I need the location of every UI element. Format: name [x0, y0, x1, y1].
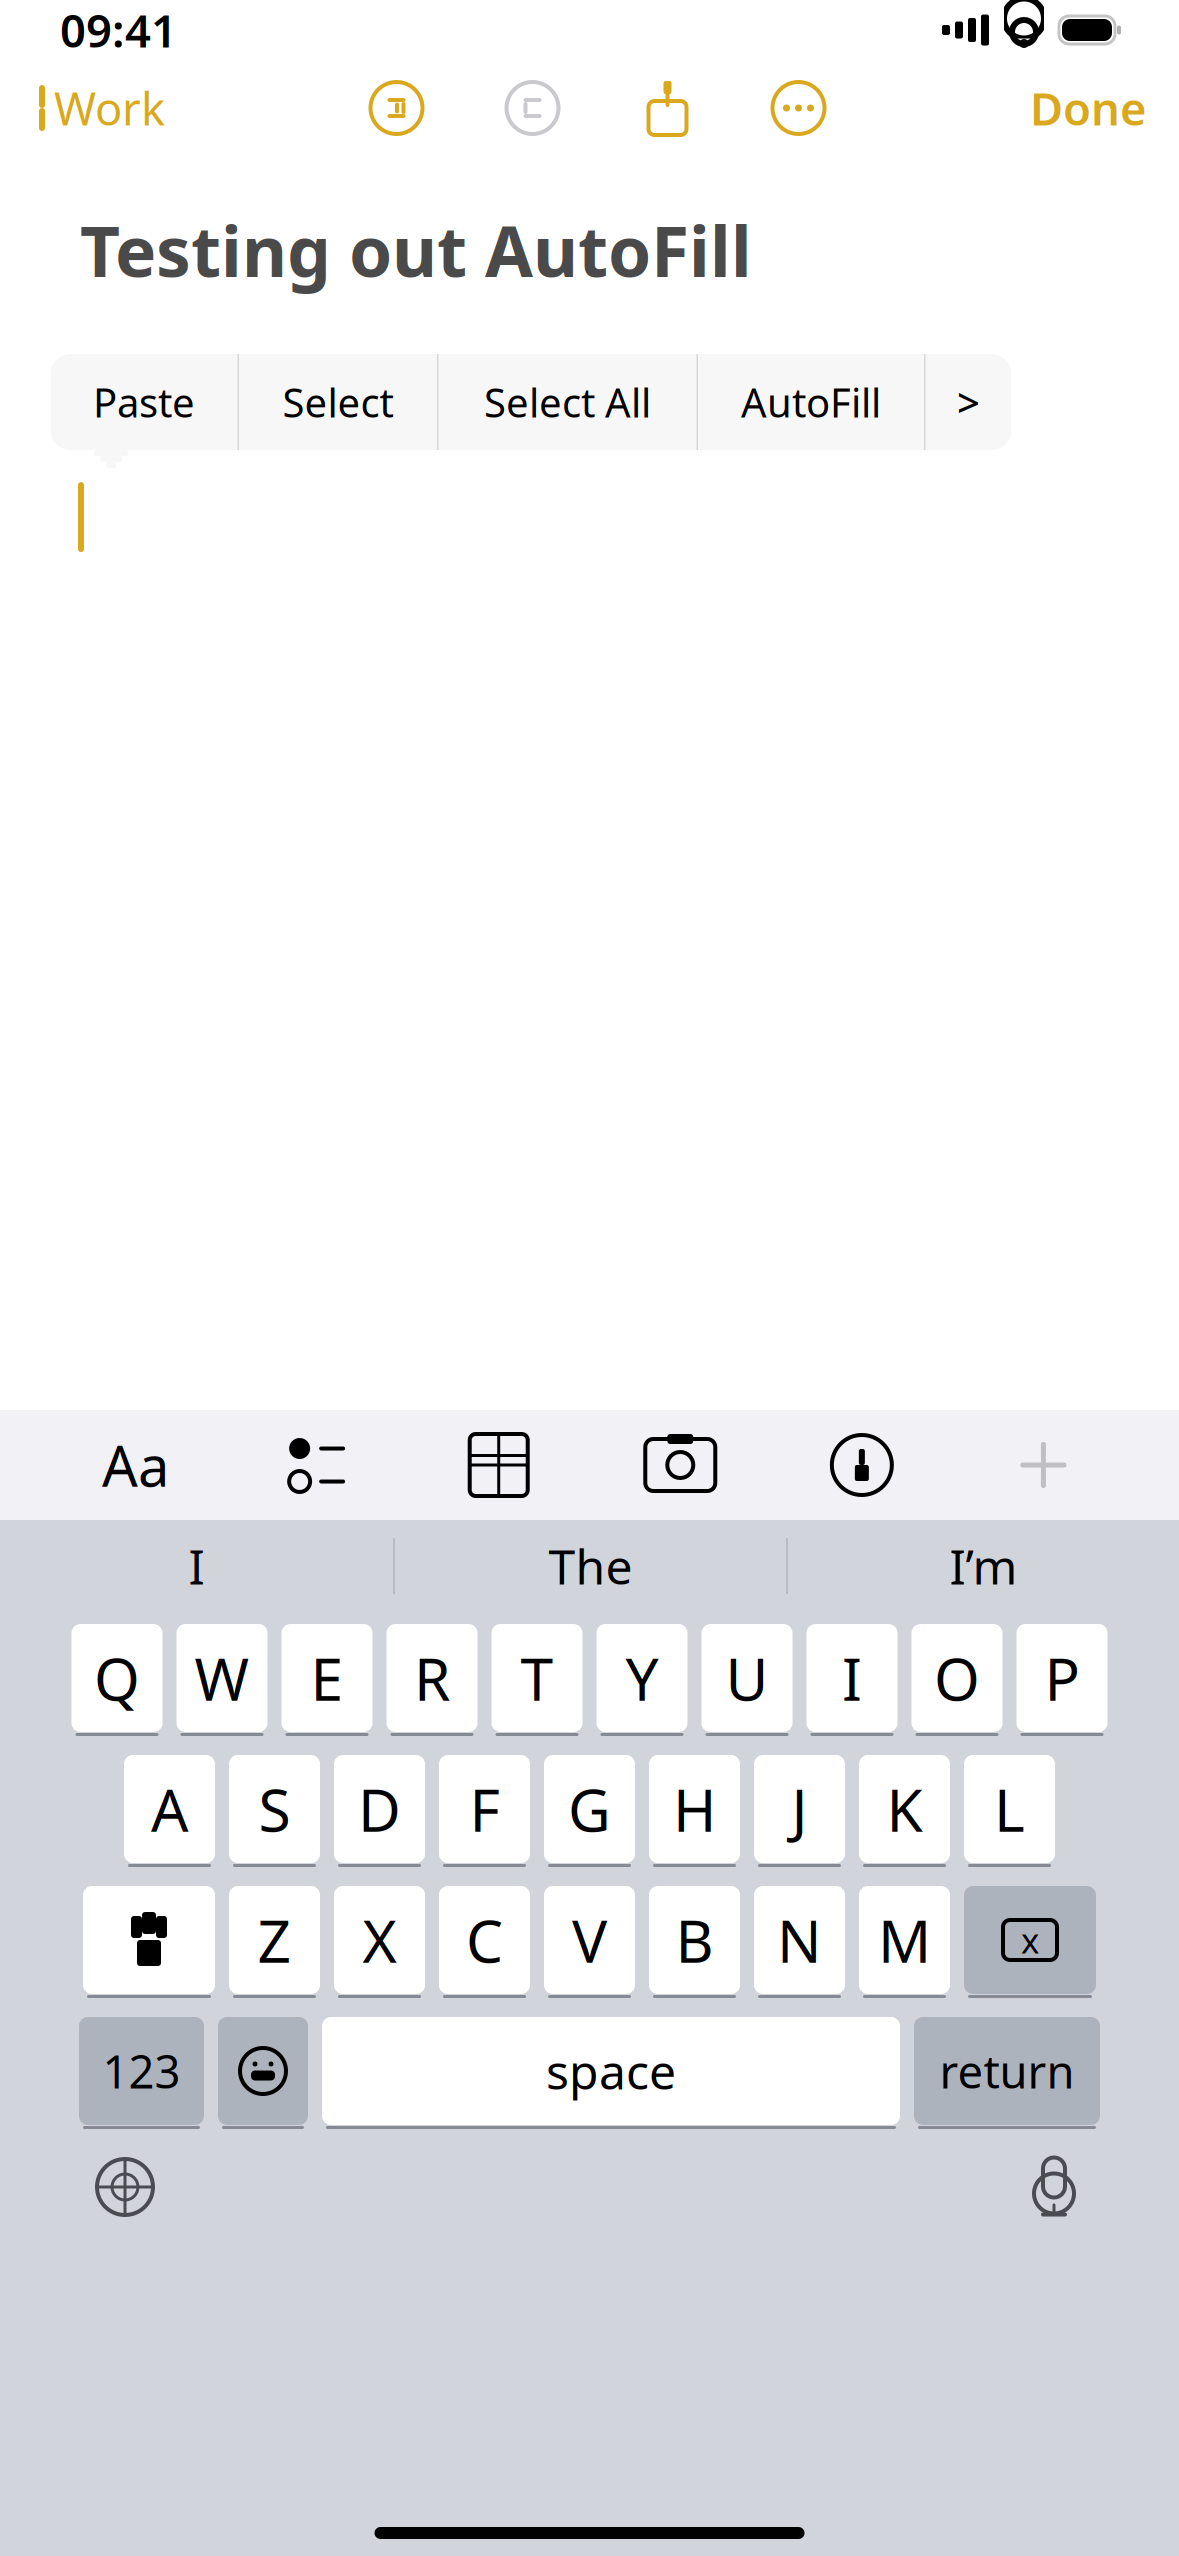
- staticText: J: [791, 1770, 807, 1848]
- staticText: Paste: [93, 375, 195, 429]
- button[interactable]: O: [911, 1624, 1002, 1736]
- button[interactable]: Paste: [50, 354, 237, 450]
- staticText: G: [568, 1770, 611, 1848]
- staticText: N: [777, 1901, 822, 1979]
- button[interactable]: space: [322, 2017, 900, 2129]
- button[interactable]: More: [770, 80, 826, 136]
- button[interactable]: S: [229, 1755, 320, 1867]
- button[interactable]: W: [176, 1624, 267, 1736]
- staticText: W: [194, 1639, 249, 1717]
- staticText: Select: [282, 375, 393, 429]
- staticText: 09:41: [60, 0, 177, 60]
- button[interactable]: X: [334, 1886, 425, 1998]
- staticText: V: [572, 1901, 607, 1979]
- button[interactable]: Emoji: [218, 2017, 308, 2129]
- staticText: Select All: [484, 375, 651, 429]
- staticText: Testing out AutoFill: [80, 204, 752, 296]
- button[interactable]: R: [386, 1624, 477, 1736]
- staticText: S: [258, 1770, 290, 1848]
- button[interactable]: Next keyboard: [70, 2139, 180, 2235]
- button[interactable]: M: [859, 1886, 950, 1998]
- staticText: H: [673, 1770, 716, 1848]
- button[interactable]: Delete: [964, 1886, 1096, 1998]
- staticText: AutoFill: [741, 375, 881, 429]
- staticText: 123: [102, 2041, 180, 2101]
- button[interactable]: More actions: [925, 354, 1011, 450]
- button[interactable]: F: [439, 1755, 530, 1867]
- staticText: K: [886, 1770, 922, 1848]
- staticText: I: [842, 1639, 862, 1717]
- button[interactable]: Dictate: [999, 2139, 1109, 2235]
- button[interactable]: N: [754, 1886, 845, 1998]
- button[interactable]: V: [544, 1886, 635, 1998]
- staticText: The: [548, 1534, 632, 1598]
- staticText: O: [934, 1639, 980, 1717]
- staticText: Q: [94, 1639, 140, 1717]
- button[interactable]: Y: [596, 1624, 687, 1736]
- staticText: E: [310, 1639, 343, 1717]
- button[interactable]: K: [859, 1755, 950, 1867]
- button[interactable]: Work: [0, 68, 165, 148]
- staticText: I: [188, 1534, 204, 1598]
- staticText: A: [151, 1770, 188, 1848]
- button[interactable]: L: [964, 1755, 1055, 1867]
- staticText: Done: [1030, 78, 1147, 138]
- button[interactable]: The: [395, 1523, 786, 1609]
- button[interactable]: Z: [229, 1886, 320, 1998]
- staticText: B: [675, 1901, 713, 1979]
- staticText: x: [1021, 1917, 1039, 1963]
- button[interactable]: Select All: [438, 354, 696, 450]
- staticText: Z: [257, 1901, 291, 1979]
- staticText: U: [725, 1639, 768, 1717]
- button[interactable]: Shift: [83, 1886, 215, 1998]
- staticText: >: [957, 375, 980, 429]
- button[interactable]: H: [649, 1755, 740, 1867]
- button[interactable]: 123: [79, 2017, 204, 2129]
- button[interactable]: I’m: [788, 1523, 1179, 1609]
- button[interactable]: T: [491, 1624, 582, 1736]
- button[interactable]: P: [1016, 1624, 1107, 1736]
- staticText: X: [362, 1901, 396, 1979]
- button[interactable]: D: [334, 1755, 425, 1867]
- button[interactable]: Markup: [816, 1419, 908, 1511]
- button[interactable]: Undo: [368, 80, 424, 136]
- staticText: C: [466, 1901, 503, 1979]
- button[interactable]: A: [124, 1755, 215, 1867]
- button[interactable]: J: [754, 1755, 845, 1867]
- staticText: D: [358, 1770, 401, 1848]
- staticText: M: [878, 1901, 931, 1979]
- staticText: P: [1044, 1639, 1079, 1717]
- staticText: Aa: [102, 1428, 169, 1502]
- button[interactable]: I: [806, 1624, 897, 1736]
- button[interactable]: Done: [1030, 68, 1179, 148]
- button[interactable]: Format: [90, 1419, 182, 1511]
- button[interactable]: Camera: [634, 1419, 726, 1511]
- staticText: R: [414, 1639, 450, 1717]
- button[interactable]: Select: [239, 354, 437, 450]
- button[interactable]: E: [281, 1624, 372, 1736]
- staticText: return: [939, 2041, 1074, 2101]
- button[interactable]: Q: [71, 1624, 162, 1736]
- staticText: T: [520, 1639, 553, 1717]
- button[interactable]: Table: [453, 1419, 545, 1511]
- button[interactable]: Close keyboard: [997, 1419, 1089, 1511]
- button[interactable]: AutoFill: [698, 354, 924, 450]
- button[interactable]: Redo: [504, 80, 560, 136]
- staticText: Work: [54, 78, 165, 138]
- staticText: space: [546, 2039, 676, 2103]
- staticText: Y: [625, 1639, 658, 1717]
- button[interactable]: C: [439, 1886, 530, 1998]
- button[interactable]: Share: [640, 79, 694, 137]
- button[interactable]: Checklist: [271, 1419, 363, 1511]
- button[interactable]: I: [0, 1523, 393, 1609]
- staticText: L: [994, 1770, 1025, 1848]
- staticText: I’m: [949, 1534, 1017, 1598]
- button[interactable]: U: [701, 1624, 792, 1736]
- button[interactable]: G: [544, 1755, 635, 1867]
- button[interactable]: B: [649, 1886, 740, 1998]
- staticText: F: [469, 1770, 499, 1848]
- button[interactable]: return: [914, 2017, 1100, 2129]
